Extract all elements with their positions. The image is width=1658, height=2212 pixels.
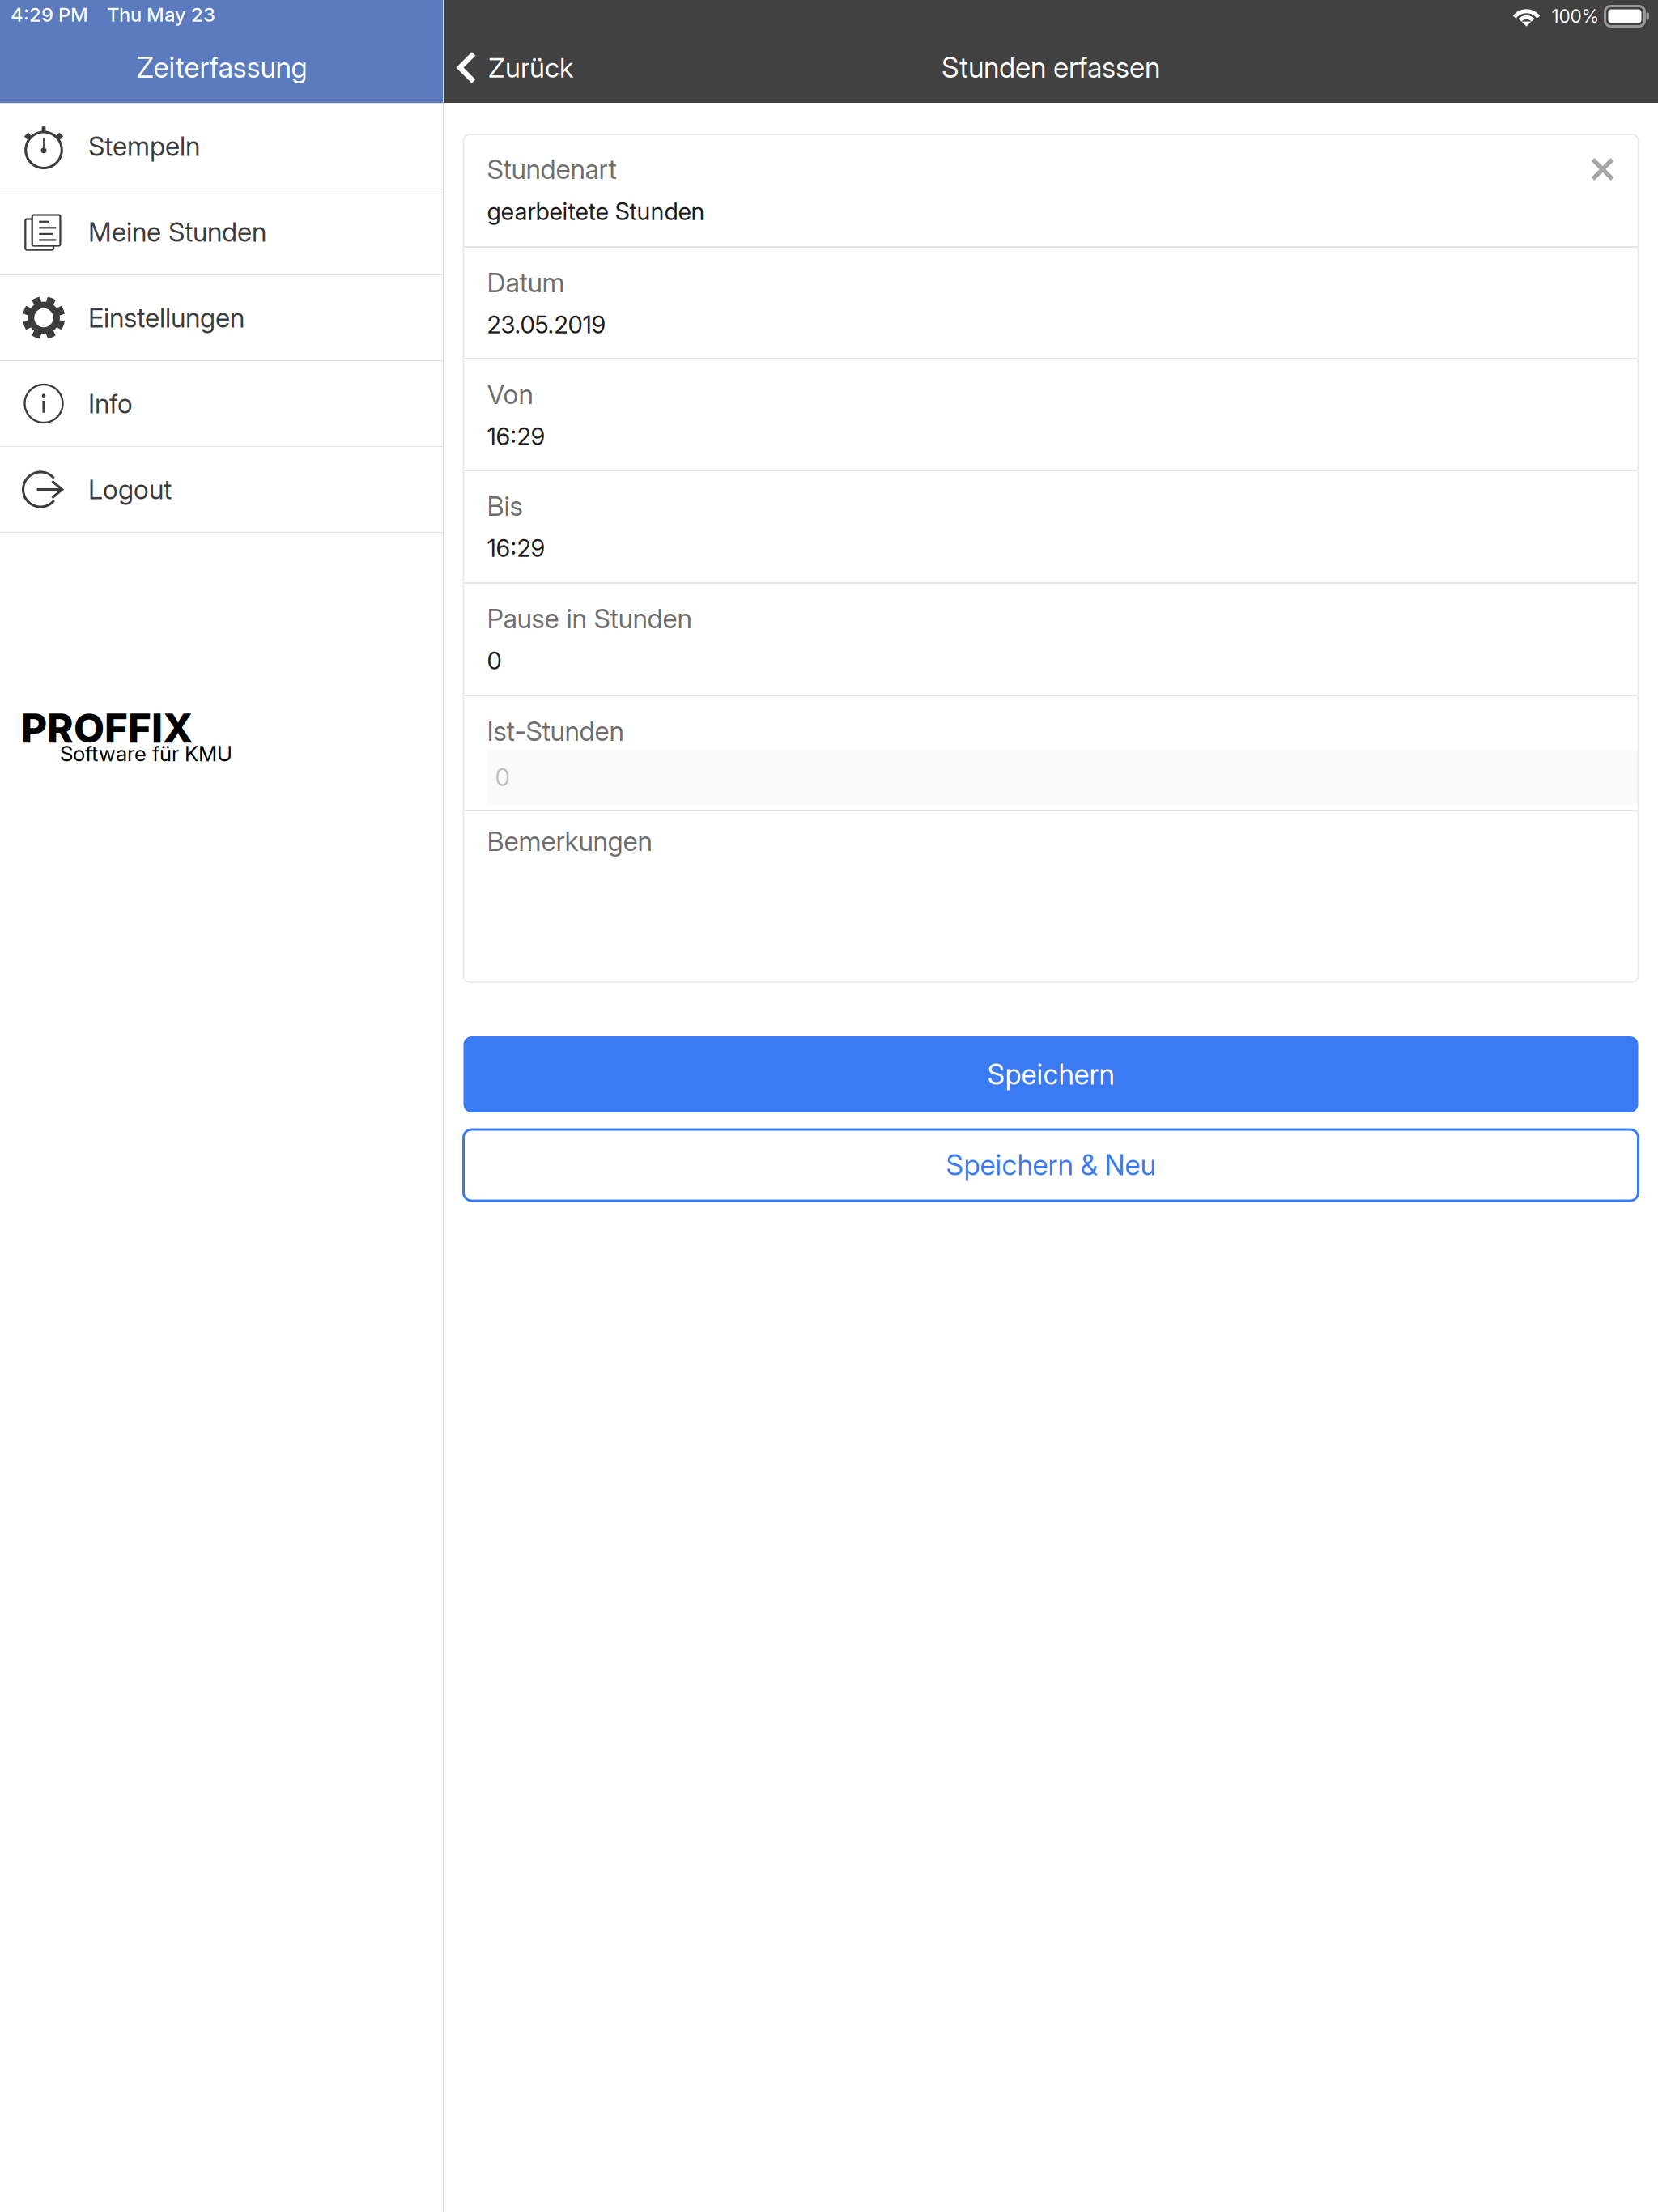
staticText: Stempeln <box>88 130 200 162</box>
staticText: 4:29 PM <box>11 3 88 26</box>
staticText: Stundenart <box>487 153 616 185</box>
button[interactable]: Speichern <box>463 1036 1638 1112</box>
staticText: Ist-Stunden <box>487 715 624 747</box>
staticText: 0 <box>487 646 502 675</box>
button[interactable]: Stempeln <box>0 104 444 189</box>
staticText: Datum <box>487 267 565 299</box>
staticText: 16:29 <box>487 422 545 451</box>
staticText: 16:29 <box>487 534 545 563</box>
staticText: Zeiterfassung <box>136 51 307 85</box>
staticText: Meine Stunden <box>88 216 266 248</box>
staticText: Zurück <box>488 51 573 84</box>
staticText: Thu May 23 <box>107 3 215 26</box>
staticText: Bis <box>487 490 523 522</box>
staticText: Bemerkungen <box>487 825 652 857</box>
button[interactable]: Einstellungen <box>0 275 444 361</box>
staticText: 100% <box>1552 5 1599 27</box>
staticText: Von <box>487 378 533 410</box>
staticText: 0 <box>495 763 510 792</box>
staticText: Einstellungen <box>88 302 244 334</box>
button[interactable]: Speichern & Neu <box>463 1129 1638 1201</box>
staticText: Stunden erfassen <box>942 51 1160 85</box>
staticText: Speichern & Neu <box>946 1148 1156 1182</box>
button[interactable]: Feld leeren <box>1585 151 1620 187</box>
button[interactable]: Meine Stunden <box>0 189 444 275</box>
staticText: Speichern <box>987 1057 1114 1091</box>
staticText: 23.05.2019 <box>487 310 606 339</box>
button[interactable]: Info <box>0 361 444 447</box>
staticText: Info <box>88 388 133 420</box>
staticText: Pause in Stunden <box>487 603 692 635</box>
staticText: Software für KMU <box>60 741 232 766</box>
staticText: Logout <box>88 473 172 505</box>
staticText: PROFFIX <box>21 704 193 752</box>
button[interactable]: Logout <box>0 447 444 533</box>
button[interactable]: Zurück <box>444 32 588 103</box>
staticText: gearbeitete Stunden <box>487 197 705 226</box>
